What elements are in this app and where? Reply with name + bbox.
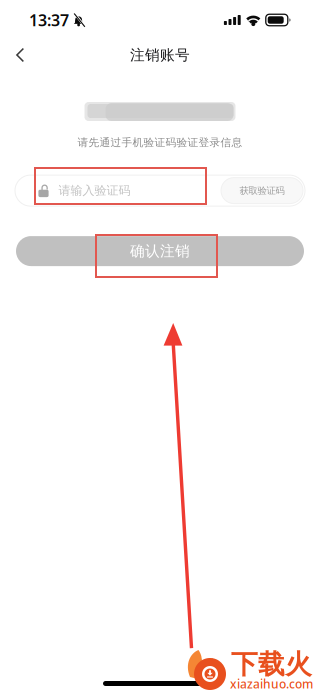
button[interactable]: Back xyxy=(0,40,54,70)
staticText: 13:37 xyxy=(29,9,69,31)
button[interactable]: 获取验证码 xyxy=(221,178,303,204)
staticText: 确认注销 xyxy=(130,242,190,260)
button[interactable]: 确认注销 xyxy=(16,236,304,266)
staticText: 注销账号 xyxy=(130,46,190,64)
staticText: 获取验证码 xyxy=(239,185,284,196)
staticText: 请先通过手机验证码验证登录信息 xyxy=(77,136,242,149)
staticText: 下载火 xyxy=(231,648,312,681)
staticText: xiazaihuo.com xyxy=(230,676,313,692)
staticText: 请输入验证码 xyxy=(58,183,130,198)
